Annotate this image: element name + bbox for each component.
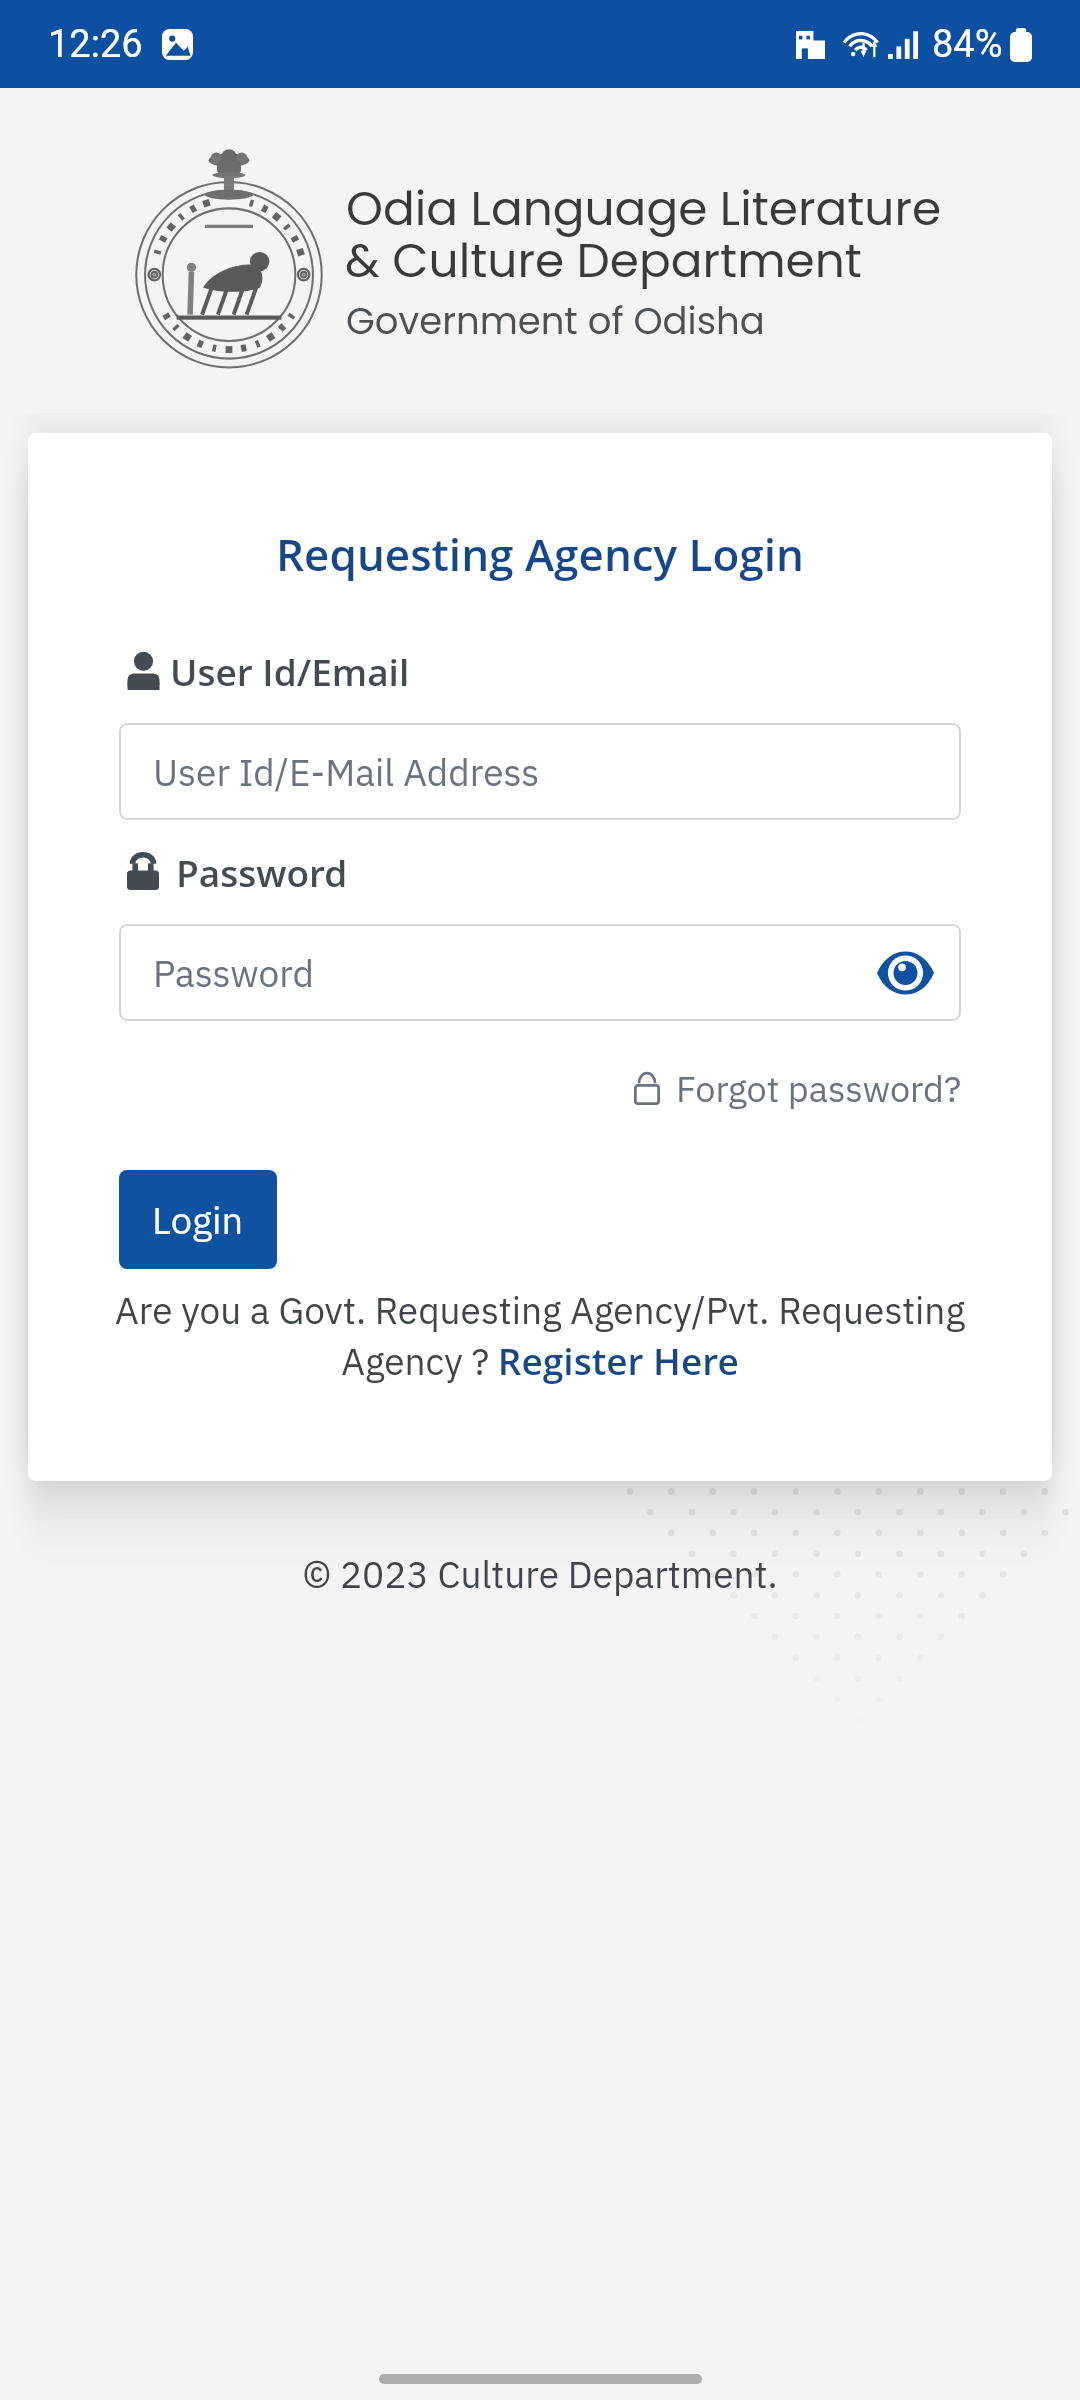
button[interactable]: User Id/Email [127, 646, 410, 696]
staticText: User Id/Email [170, 646, 410, 696]
button[interactable]: Forgot password? [634, 1065, 962, 1112]
staticText: 84% [932, 22, 1003, 67]
staticText: User Id/E-Mail Address [153, 748, 540, 796]
staticText: Login [152, 1195, 244, 1244]
button[interactable]: Password [119, 924, 961, 1021]
staticText: Requesting Agency Login [28, 524, 1052, 584]
staticText: Forgot password? [676, 1065, 962, 1112]
staticText: Government of Odisha [346, 295, 765, 347]
staticText: Odia Language Literature [346, 176, 942, 242]
button[interactable]: User Id/E-Mail Address [119, 723, 961, 820]
staticText: 12:26 [48, 22, 143, 67]
staticText: Password [176, 847, 348, 897]
button[interactable]: Login [119, 1170, 277, 1269]
staticText: Password [153, 949, 315, 997]
staticText: & Culture Department [345, 228, 862, 294]
other: Show password [877, 953, 934, 993]
button[interactable]: Password [127, 847, 348, 897]
staticText: Are you a Govt. Requesting Agency/Pvt. R… [68, 1286, 1012, 1386]
staticText: © 2023 Culture Department. [0, 1550, 1080, 1598]
